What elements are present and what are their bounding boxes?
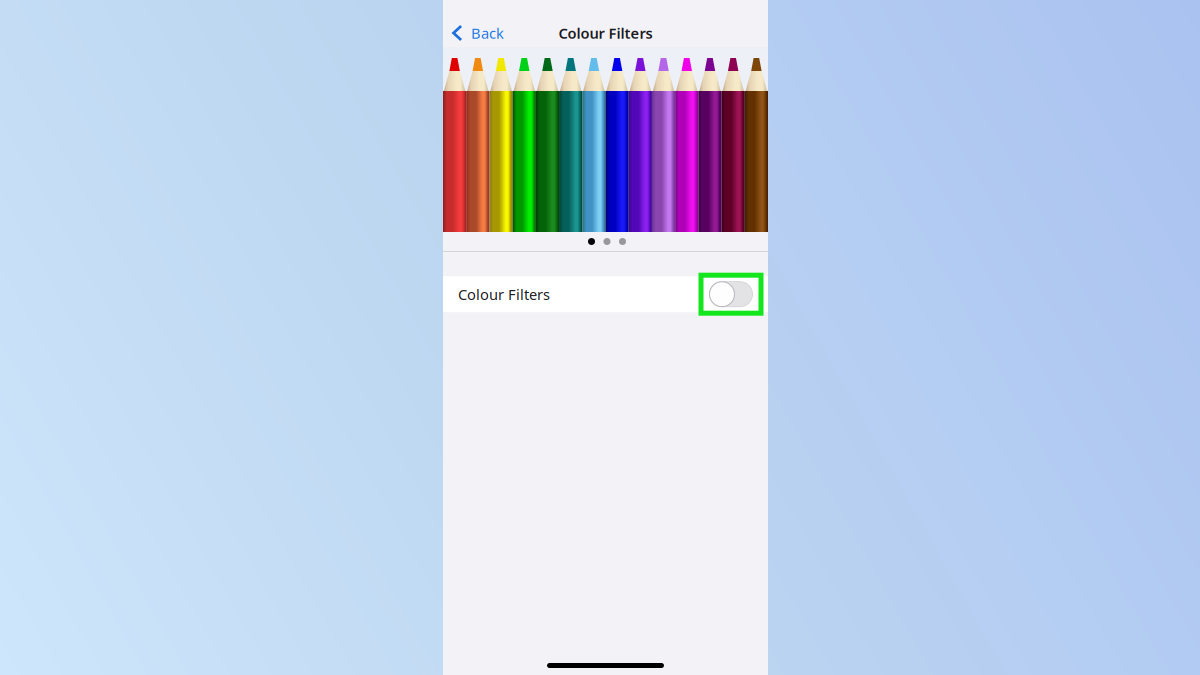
- staticText: Colour Filters: [458, 284, 550, 304]
- staticText: Colour Filters: [558, 23, 652, 43]
- button[interactable]: Back: [443, 19, 504, 47]
- button[interactable]: Colour Filters: [443, 276, 768, 312]
- staticText: Back: [471, 23, 504, 43]
